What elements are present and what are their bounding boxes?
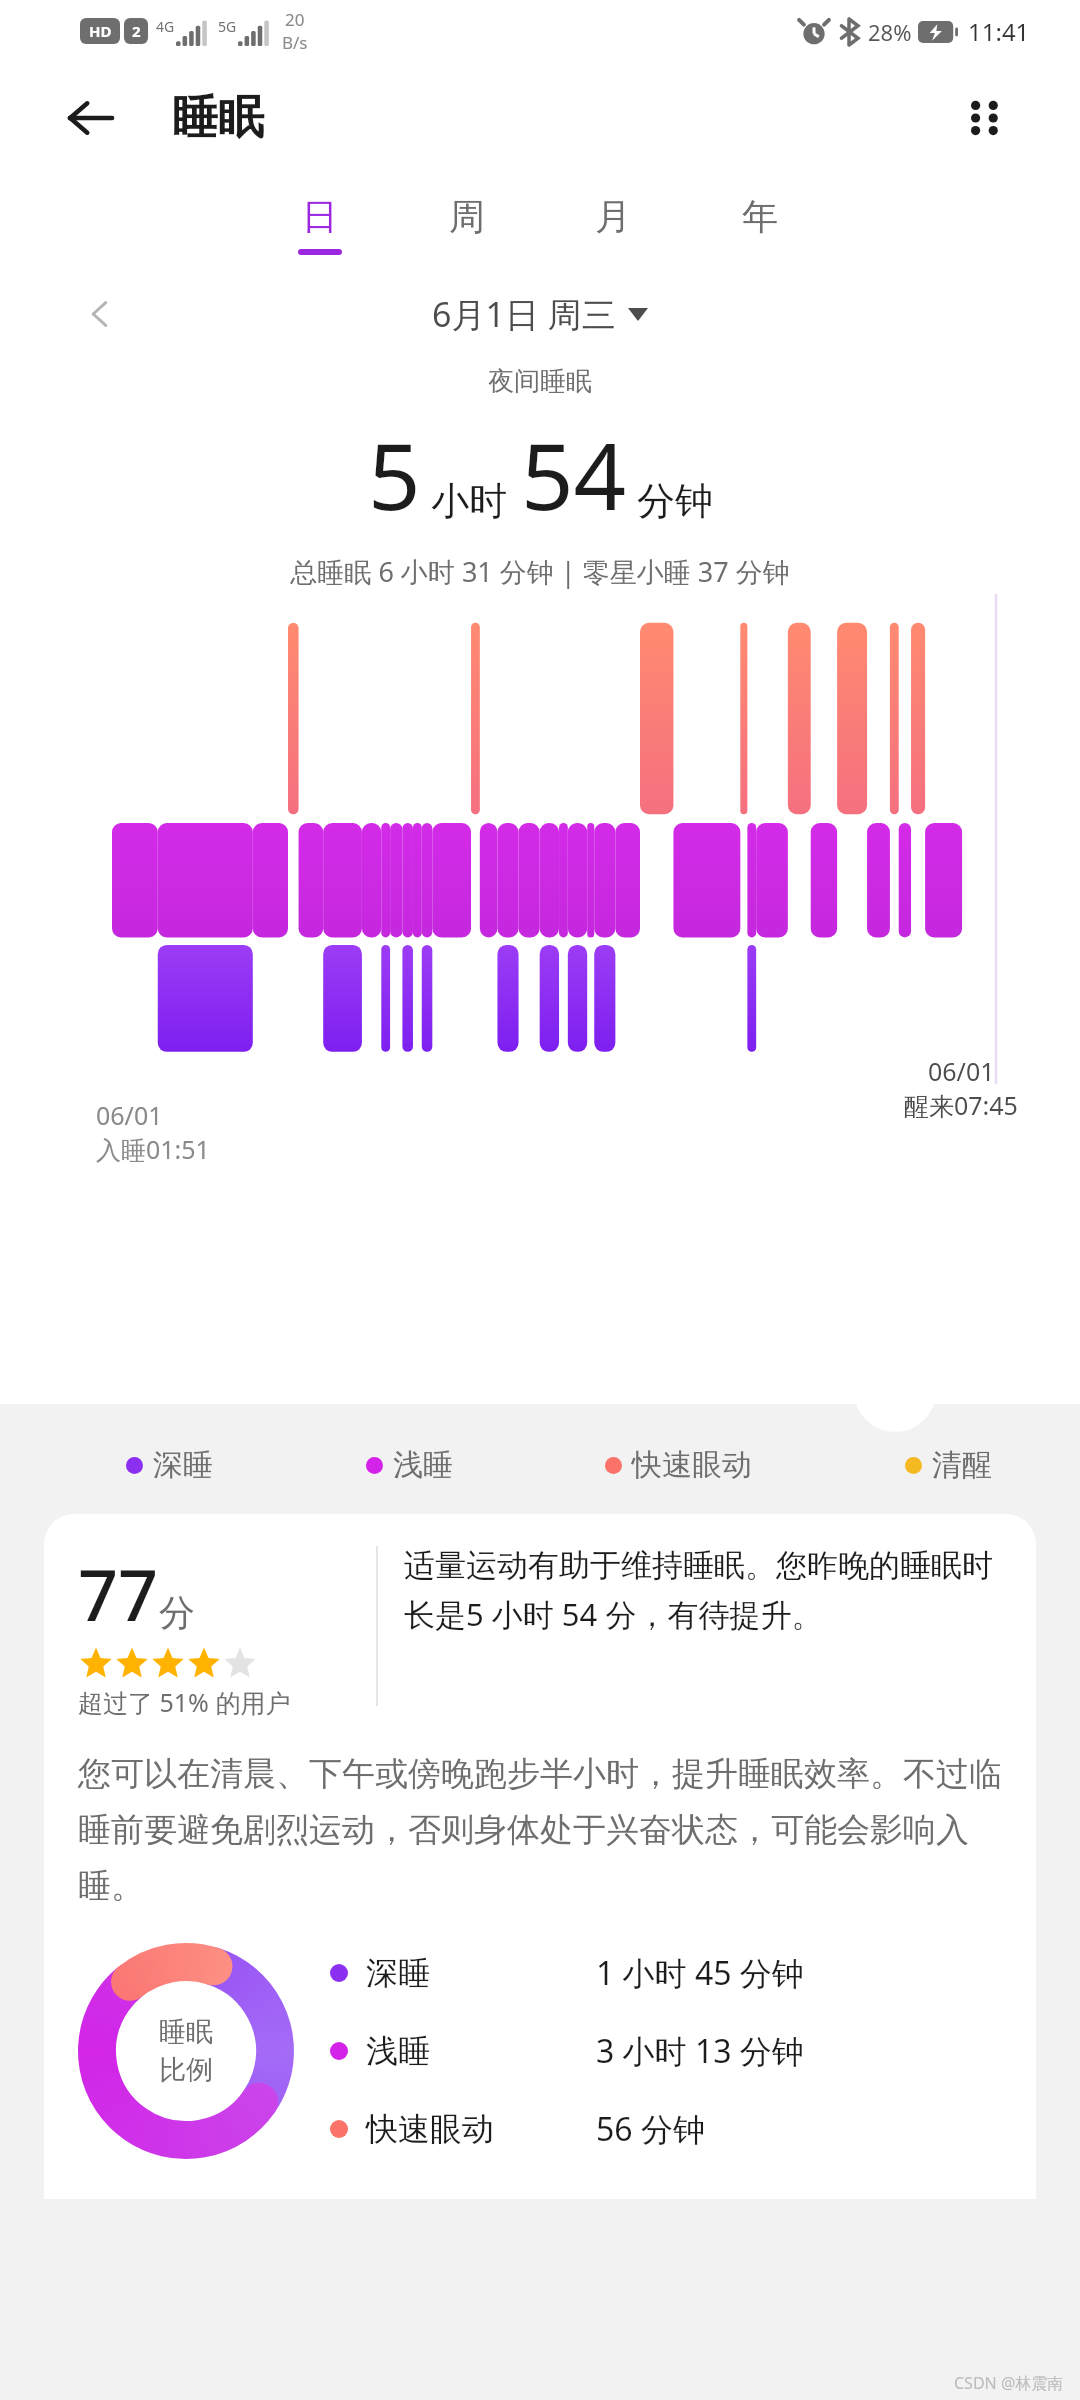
button[interactable]: 快速眼动 [605,1446,752,1484]
button[interactable]: 日 [290,194,350,255]
staticText: 总睡眠 6 小时 31 分钟 | 零星小睡 37 分钟 [0,553,1080,590]
staticText: 快速眼动 [632,1446,752,1484]
staticText: 06/01 [928,1054,995,1088]
button[interactable]: 滑动手柄 [854,1350,936,1432]
staticText: 28% [868,17,912,47]
staticText: 睡眠 [172,89,264,147]
button[interactable]: 前一天 [70,284,130,344]
staticText: 睡眠 [159,2015,213,2049]
staticText: 小时 [431,477,507,525]
staticText: 54 [521,412,627,537]
button[interactable]: 浅睡 [330,2029,1002,2073]
staticText: 超过了 51% 的用户 [78,1685,291,1719]
button[interactable]: 年 [730,194,790,255]
staticText: 5 [368,412,421,537]
staticText: 清醒 [932,1446,992,1484]
staticText: 56 分钟 [596,2107,705,2151]
staticText: 深睡 [153,1446,213,1484]
button[interactable]: 更多选项 [946,80,1022,156]
staticText: 分钟 [637,477,713,525]
staticText: 醒来07:45 [904,1088,1018,1122]
staticText: 77 [78,1546,159,1641]
button[interactable]: 快速眼动 [330,2107,1002,2151]
staticText: 1 小时 45 分钟 [596,1951,804,1995]
staticText: 月 [595,194,631,239]
staticText: 浅睡 [393,1446,453,1484]
staticText: 6月1日 周三 [432,291,616,337]
staticText: 深睡 [366,1953,430,1993]
staticText: 周 [449,194,485,239]
staticText: 您可以在清晨、下午或傍晚跑步半小时，提升睡眠效率。不过临睡前要避免剧烈运动，否则… [78,1753,1002,1907]
staticText: 20 [285,8,305,31]
staticText: HD [89,21,112,41]
button[interactable]: 返回 [52,80,128,156]
staticText: 06/01 [96,1098,163,1132]
staticText: 年 [742,194,778,239]
button[interactable]: 清醒 [905,1446,992,1484]
staticText: 夜间睡眠 [0,365,1080,398]
button[interactable]: 深睡 [126,1446,213,1484]
staticText: 入睡01:51 [96,1132,210,1166]
staticText: 11:41 [968,15,1030,48]
staticText: 浅睡 [366,2031,430,2071]
button[interactable]: 77 [44,1514,1036,2199]
staticText: 4G [156,17,175,36]
staticText: 2 [132,21,141,41]
button[interactable]: 浅睡 [366,1446,453,1484]
staticText: 比例 [159,2053,213,2087]
staticText: 日 [302,194,338,239]
staticText: 适量运动有助于维持睡眠。您昨晚的睡眠时长是5 小时 54 分，有待提升。 [404,1546,1002,1635]
staticText: 5G [218,17,237,36]
button[interactable]: 周 [437,194,497,255]
staticText: CSDN @林震南 [954,2372,1064,2394]
staticText: 快速眼动 [366,2109,494,2149]
staticText: 3 小时 13 分钟 [596,2029,804,2073]
button[interactable]: 月 [583,194,643,255]
button[interactable]: 6月1日 周三 [424,283,656,345]
staticText: 分 [159,1590,195,1635]
button[interactable]: 深睡 [330,1951,1002,1995]
staticText: B/s [282,31,308,54]
